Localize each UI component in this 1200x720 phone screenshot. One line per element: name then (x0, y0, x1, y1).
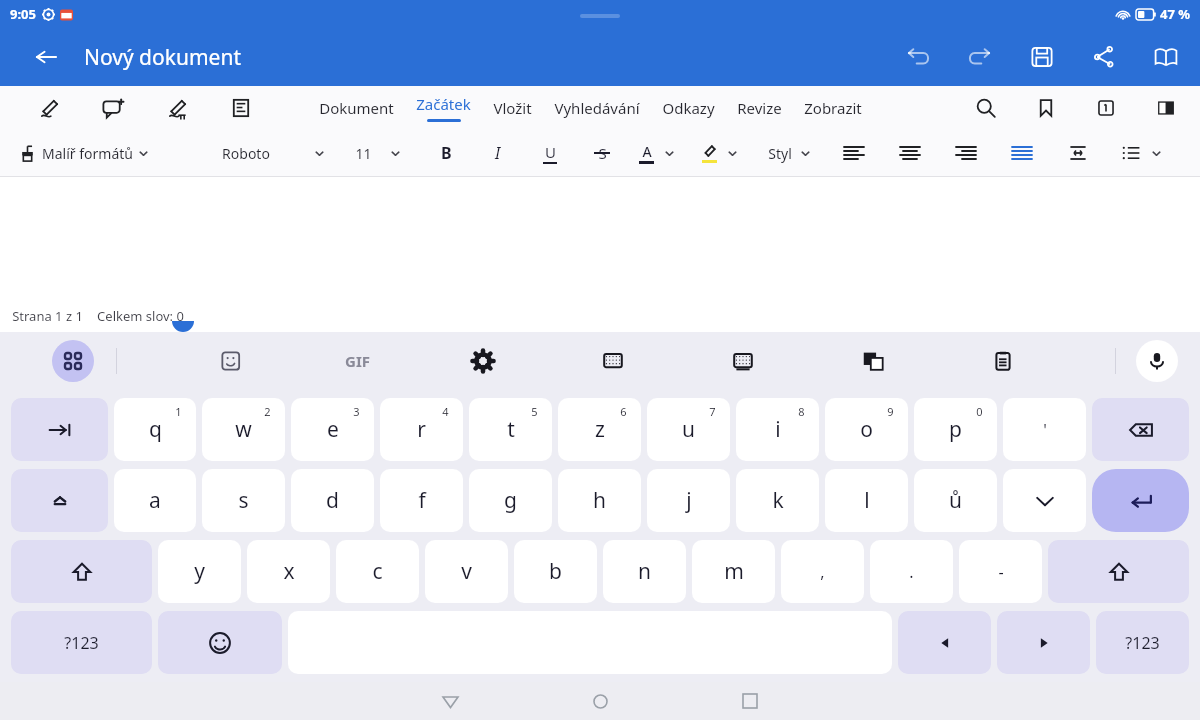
button[interactable]: Read mode (1146, 37, 1186, 77)
button[interactable]: More (1003, 469, 1086, 532)
button[interactable]: Justify (1005, 136, 1039, 170)
button[interactable]: Redo (960, 37, 1000, 77)
button[interactable]: y (158, 540, 241, 603)
staticText: Malíř formátů (42, 144, 133, 163)
button[interactable]: b (514, 540, 597, 603)
button[interactable]: z (558, 398, 641, 461)
button[interactable]: Cursor left (898, 611, 991, 674)
button[interactable]: - (959, 540, 1042, 603)
button[interactable]: Line spacing (1061, 136, 1095, 170)
button[interactable]: x (247, 540, 330, 603)
button[interactable]: o (825, 398, 908, 461)
button[interactable]: s (202, 469, 285, 532)
button[interactable]: Revize (737, 86, 782, 130)
button[interactable]: Home (577, 682, 623, 720)
button[interactable]: Cursor right (997, 611, 1090, 674)
button[interactable]: n (603, 540, 686, 603)
button[interactable]: ?123 (11, 611, 152, 674)
button[interactable] (1121, 143, 1162, 163)
button[interactable]: Underline (535, 138, 565, 168)
button[interactable]: Enter (1092, 469, 1189, 532)
button[interactable]: Back (427, 682, 473, 720)
staticText: 2 (264, 404, 271, 419)
button[interactable]: ů (914, 469, 997, 532)
button[interactable]: Back (26, 37, 66, 77)
button[interactable]: m (692, 540, 775, 603)
button[interactable]: p (914, 398, 997, 461)
button[interactable]: Outline (222, 89, 260, 127)
button[interactable] (701, 144, 738, 163)
button[interactable]: Draw (30, 89, 68, 127)
button[interactable]: q (114, 398, 196, 461)
button[interactable]: Settings (465, 343, 501, 379)
staticText: 4 (442, 404, 449, 419)
button[interactable]: , (781, 540, 864, 603)
button[interactable]: Clipboard (985, 343, 1021, 379)
button[interactable]: Apps (52, 340, 94, 382)
button[interactable]: Vyhledávání (554, 86, 640, 130)
button[interactable]: Align center (893, 136, 927, 170)
button[interactable]: Backspace (1092, 398, 1189, 461)
button[interactable]: g (469, 469, 552, 532)
button[interactable]: Zobrazit (804, 86, 862, 130)
button[interactable]: Shift (1048, 540, 1189, 603)
button[interactable]: Začátek (416, 86, 471, 130)
button[interactable]: h (558, 469, 641, 532)
button[interactable]: i (736, 398, 819, 461)
button[interactable]: . (870, 540, 953, 603)
button[interactable]: w (202, 398, 285, 461)
staticText: - (998, 561, 1004, 583)
button[interactable]: t (469, 398, 552, 461)
button[interactable]: Comment (94, 89, 132, 127)
button[interactable]: Styl (768, 144, 811, 163)
staticText: a (149, 486, 161, 515)
button[interactable]: ' (1003, 398, 1086, 461)
button[interactable]: A (639, 142, 675, 164)
button[interactable]: 11 (355, 144, 401, 163)
button[interactable]: Share (1084, 37, 1124, 77)
button[interactable]: B (431, 138, 461, 168)
button[interactable]: r (380, 398, 463, 461)
button[interactable]: Caps lock (11, 469, 108, 532)
staticText: k (772, 486, 784, 515)
button[interactable]: e (291, 398, 374, 461)
button[interactable]: Undo (898, 37, 938, 77)
button[interactable]: Tab (11, 398, 108, 461)
button[interactable]: u (647, 398, 730, 461)
button[interactable]: c (336, 540, 419, 603)
button[interactable]: Bookmark (1028, 90, 1064, 126)
button[interactable]: Malíř formátů (18, 144, 149, 163)
button[interactable]: a (114, 469, 196, 532)
button[interactable]: Align left (837, 136, 871, 170)
button[interactable]: Page count (1088, 90, 1124, 126)
button[interactable]: Strikethrough (587, 138, 617, 168)
button[interactable]: Search (968, 90, 1004, 126)
button[interactable]: Translate (855, 343, 891, 379)
button[interactable]: I (483, 138, 513, 168)
button[interactable]: Keyboard layout (725, 343, 761, 379)
button[interactable]: Emoji (158, 611, 282, 674)
button[interactable]: GIF (345, 351, 370, 371)
button[interactable]: d (291, 469, 374, 532)
button[interactable]: Save (1022, 37, 1062, 77)
button[interactable]: Voice input (1136, 340, 1178, 382)
button[interactable]: Emoji keyboard (595, 343, 631, 379)
button[interactable]: Odkazy (662, 86, 715, 130)
staticText: o (860, 415, 873, 444)
button[interactable]: Recents (727, 682, 773, 720)
button[interactable]: Shift (11, 540, 152, 603)
button[interactable]: v (425, 540, 508, 603)
button[interactable]: f (380, 469, 463, 532)
button[interactable]: Stickers (212, 342, 250, 380)
button[interactable]: j (647, 469, 730, 532)
button[interactable]: l (825, 469, 908, 532)
button[interactable]: ?123 (1096, 611, 1189, 674)
button[interactable]: Align right (949, 136, 983, 170)
button[interactable]: Dokument (319, 86, 394, 130)
button[interactable]: Equation (158, 89, 196, 127)
button[interactable]: k (736, 469, 819, 532)
button[interactable]: Theme (1148, 90, 1184, 126)
button[interactable]: Roboto (222, 144, 325, 163)
button[interactable]: Vložit (493, 86, 532, 130)
